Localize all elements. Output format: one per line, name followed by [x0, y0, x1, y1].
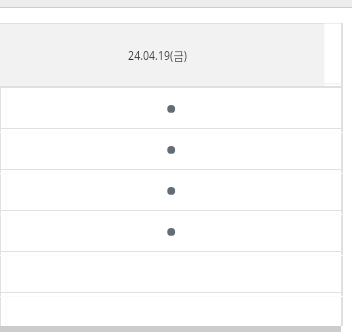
button[interactable]: Schedule row 4: [7, 211, 341, 252]
button[interactable]: Schedule row 2: [7, 129, 341, 170]
button[interactable]: Schedule row 3: [7, 170, 341, 211]
staticText: 24.04.19(금): [128, 47, 187, 63]
button[interactable]: 24.04.19(금): [0, 23, 314, 86]
button[interactable]: Schedule row 1: [7, 88, 341, 129]
button[interactable]: Schedule row 5: [7, 252, 341, 293]
